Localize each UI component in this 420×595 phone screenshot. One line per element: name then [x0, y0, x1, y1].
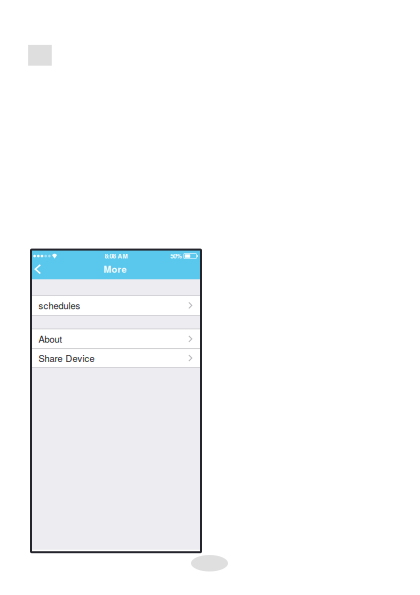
button[interactable]: Share Device [31, 349, 201, 367]
staticText: schedules [38, 299, 80, 312]
staticText: 8:08 AM [104, 252, 127, 261]
staticText: 50% [170, 252, 182, 261]
staticText: Share Device [38, 351, 94, 365]
button[interactable]: schedules [31, 296, 201, 315]
button[interactable]: Back [31, 261, 53, 278]
button[interactable]: About [31, 329, 201, 348]
staticText: More [104, 262, 127, 276]
staticText: About [38, 332, 62, 345]
